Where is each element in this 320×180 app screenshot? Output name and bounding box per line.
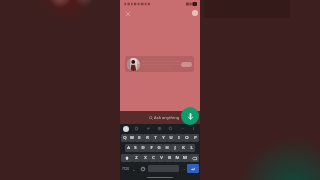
button[interactable]: K xyxy=(179,144,187,152)
button[interactable]: M xyxy=(181,154,189,162)
staticText: S xyxy=(134,145,137,151)
button[interactable]: Q xyxy=(121,134,128,142)
button[interactable]: E xyxy=(135,134,143,142)
button[interactable]: Close xyxy=(122,8,133,19)
staticText: K xyxy=(182,145,185,151)
staticText: ?123 xyxy=(122,167,129,171)
button[interactable]: Period xyxy=(180,164,187,173)
staticText: U xyxy=(169,135,173,141)
button[interactable]: V xyxy=(157,154,165,162)
staticText: V xyxy=(160,155,163,161)
button[interactable]: Open suggestion xyxy=(181,62,192,67)
button[interactable]: Google xyxy=(123,126,129,132)
staticText: X xyxy=(144,155,147,161)
button[interactable]: H xyxy=(163,144,171,152)
button[interactable]: Keyboard tool 5 xyxy=(179,125,186,132)
button[interactable]: N xyxy=(173,154,181,162)
button[interactable]: Voice search xyxy=(181,107,199,125)
staticText: P xyxy=(194,135,197,141)
staticText: Ask anything xyxy=(154,115,180,121)
staticText: N xyxy=(175,155,179,161)
button[interactable]: Y xyxy=(159,134,167,142)
staticText: Z xyxy=(135,155,138,161)
staticText: L xyxy=(190,145,193,151)
staticText: E xyxy=(138,135,141,141)
button[interactable]: F xyxy=(147,144,155,152)
button[interactable]: Emoji xyxy=(138,164,147,173)
staticText: I xyxy=(178,135,180,141)
button[interactable]: P xyxy=(191,134,199,142)
button[interactable]: B xyxy=(165,154,173,162)
button[interactable]: Open suggestion xyxy=(125,56,194,72)
button[interactable]: Symbols xyxy=(121,164,130,173)
button[interactable]: Keyboard tool 6 xyxy=(190,125,197,132)
button[interactable]: A xyxy=(125,144,132,152)
staticText: J xyxy=(174,145,176,151)
button[interactable]: O xyxy=(183,134,191,142)
button[interactable]: Comma xyxy=(130,164,138,173)
button[interactable]: Keyboard tool 3 xyxy=(156,125,163,132)
button[interactable]: X xyxy=(141,154,149,162)
button[interactable]: S xyxy=(132,144,139,152)
button[interactable]: W xyxy=(128,134,135,142)
staticText: R xyxy=(146,135,149,141)
button[interactable]: Enter xyxy=(187,164,199,173)
staticText: O xyxy=(185,135,189,141)
staticText: B xyxy=(168,155,171,161)
button[interactable]: D xyxy=(139,144,147,152)
button[interactable]: U xyxy=(167,134,175,142)
button[interactable]: Z xyxy=(132,154,141,162)
button[interactable]: J xyxy=(171,144,179,152)
button[interactable]: Ask anything xyxy=(144,111,180,124)
button[interactable]: Backspace xyxy=(189,154,199,162)
staticText: Y xyxy=(162,135,165,141)
button[interactable]: L xyxy=(187,144,195,152)
staticText: F xyxy=(150,145,153,151)
staticText: W xyxy=(130,135,134,141)
staticText: . xyxy=(183,166,185,172)
staticText: M xyxy=(183,155,187,161)
button[interactable]: C xyxy=(149,154,157,162)
staticText: , xyxy=(133,166,135,172)
staticText: T xyxy=(154,135,157,141)
button[interactable]: Shift xyxy=(121,154,132,162)
staticText: Q xyxy=(123,135,127,141)
button[interactable]: Keyboard tool 2 xyxy=(145,125,152,132)
button[interactable]: R xyxy=(143,134,151,142)
staticText: C xyxy=(152,155,155,161)
button[interactable]: T xyxy=(151,134,159,142)
staticText: H xyxy=(165,145,169,151)
staticText: G xyxy=(157,145,161,151)
staticText: A xyxy=(127,145,130,151)
button[interactable]: Keyboard tool 4 xyxy=(167,125,174,132)
button[interactable]: G xyxy=(155,144,163,152)
staticText: D xyxy=(141,145,145,151)
button[interactable]: Account xyxy=(192,10,198,16)
button[interactable]: Keyboard tool 1 xyxy=(133,125,140,132)
button[interactable]: I xyxy=(175,134,183,142)
